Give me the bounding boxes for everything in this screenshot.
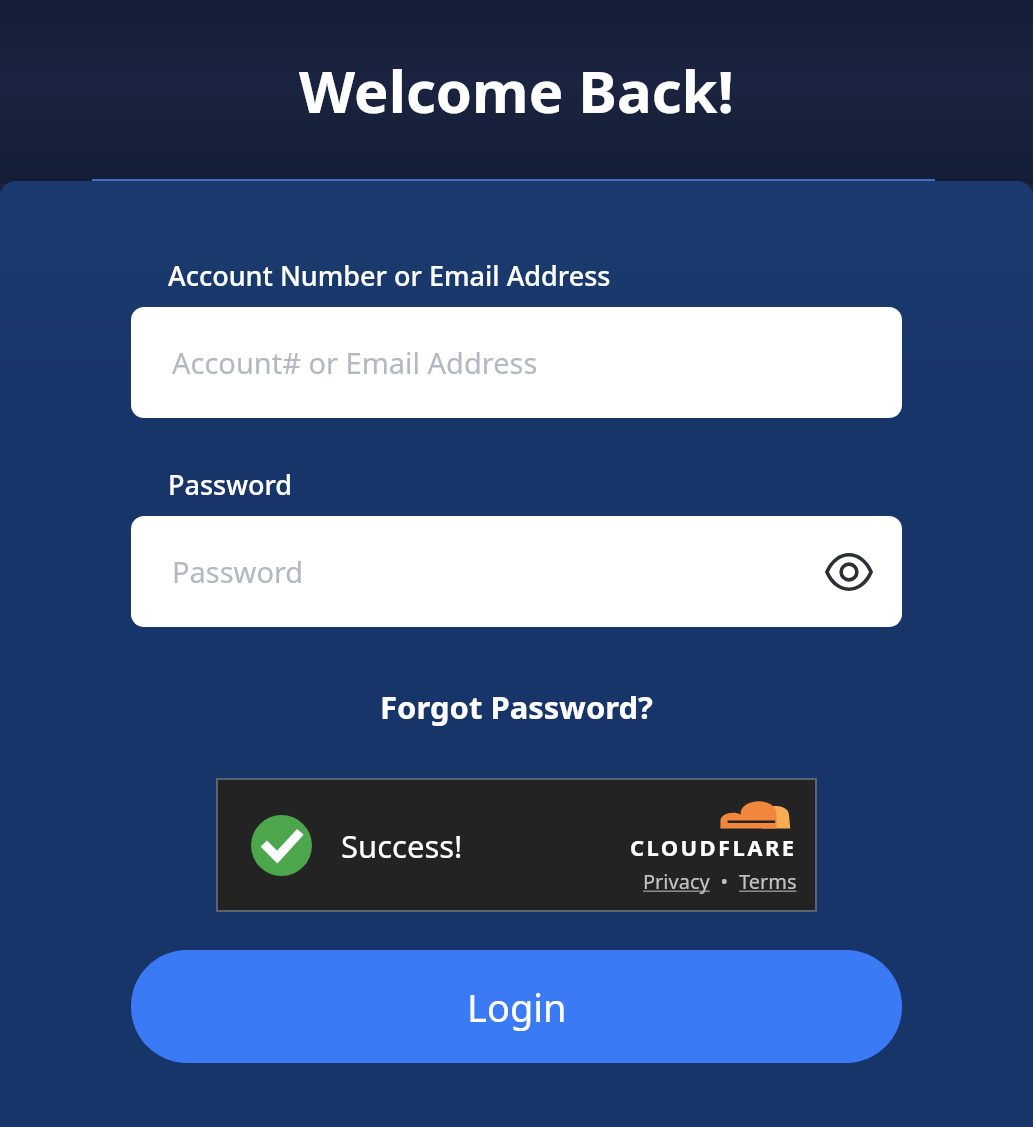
- staticText: Forgot Password?: [380, 686, 653, 728]
- staticText: CLOUDFLARE: [630, 832, 797, 862]
- staticText: Terms: [739, 868, 797, 895]
- staticText: Success!: [341, 825, 463, 867]
- button[interactable]: Success!: [216, 778, 817, 912]
- staticText: Account# or Email Address: [172, 343, 538, 382]
- staticText: Welcome Back!: [299, 51, 734, 130]
- button[interactable]: Login: [131, 950, 902, 1063]
- button[interactable]: Forgot Password?: [366, 680, 667, 734]
- button[interactable]: Show password: [820, 543, 878, 601]
- staticText: •: [710, 868, 739, 895]
- staticText: Account Number or Email Address: [168, 257, 611, 294]
- button[interactable]: Privacy: [643, 868, 710, 895]
- staticText: Privacy: [643, 868, 710, 895]
- button[interactable]: Password: [131, 516, 902, 627]
- staticText: Password: [172, 552, 304, 591]
- staticText: Login: [467, 981, 567, 1033]
- staticText: Password: [168, 466, 293, 503]
- button[interactable]: Terms: [739, 868, 797, 895]
- button[interactable]: Account# or Email Address: [131, 307, 902, 418]
